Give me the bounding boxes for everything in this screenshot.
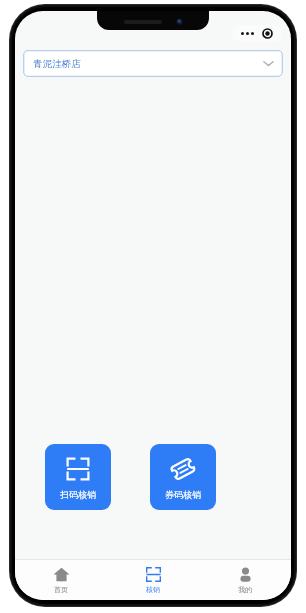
staticText: 核销: [146, 585, 160, 594]
button[interactable]: 青泥洼桥店: [23, 50, 283, 77]
button[interactable]: More options and close mini program: [232, 25, 282, 42]
button[interactable]: 我的: [199, 560, 291, 600]
staticText: 扫码核销: [60, 489, 96, 500]
button[interactable]: 券码核销: [150, 444, 216, 510]
staticText: 券码核销: [165, 489, 201, 500]
staticText: 首页: [54, 585, 68, 594]
staticText: 青泥洼桥店: [33, 58, 81, 70]
button[interactable]: 核销: [107, 560, 199, 600]
button[interactable]: 首页: [15, 560, 107, 600]
button[interactable]: 扫码核销: [45, 444, 111, 510]
staticText: 我的: [238, 585, 252, 594]
